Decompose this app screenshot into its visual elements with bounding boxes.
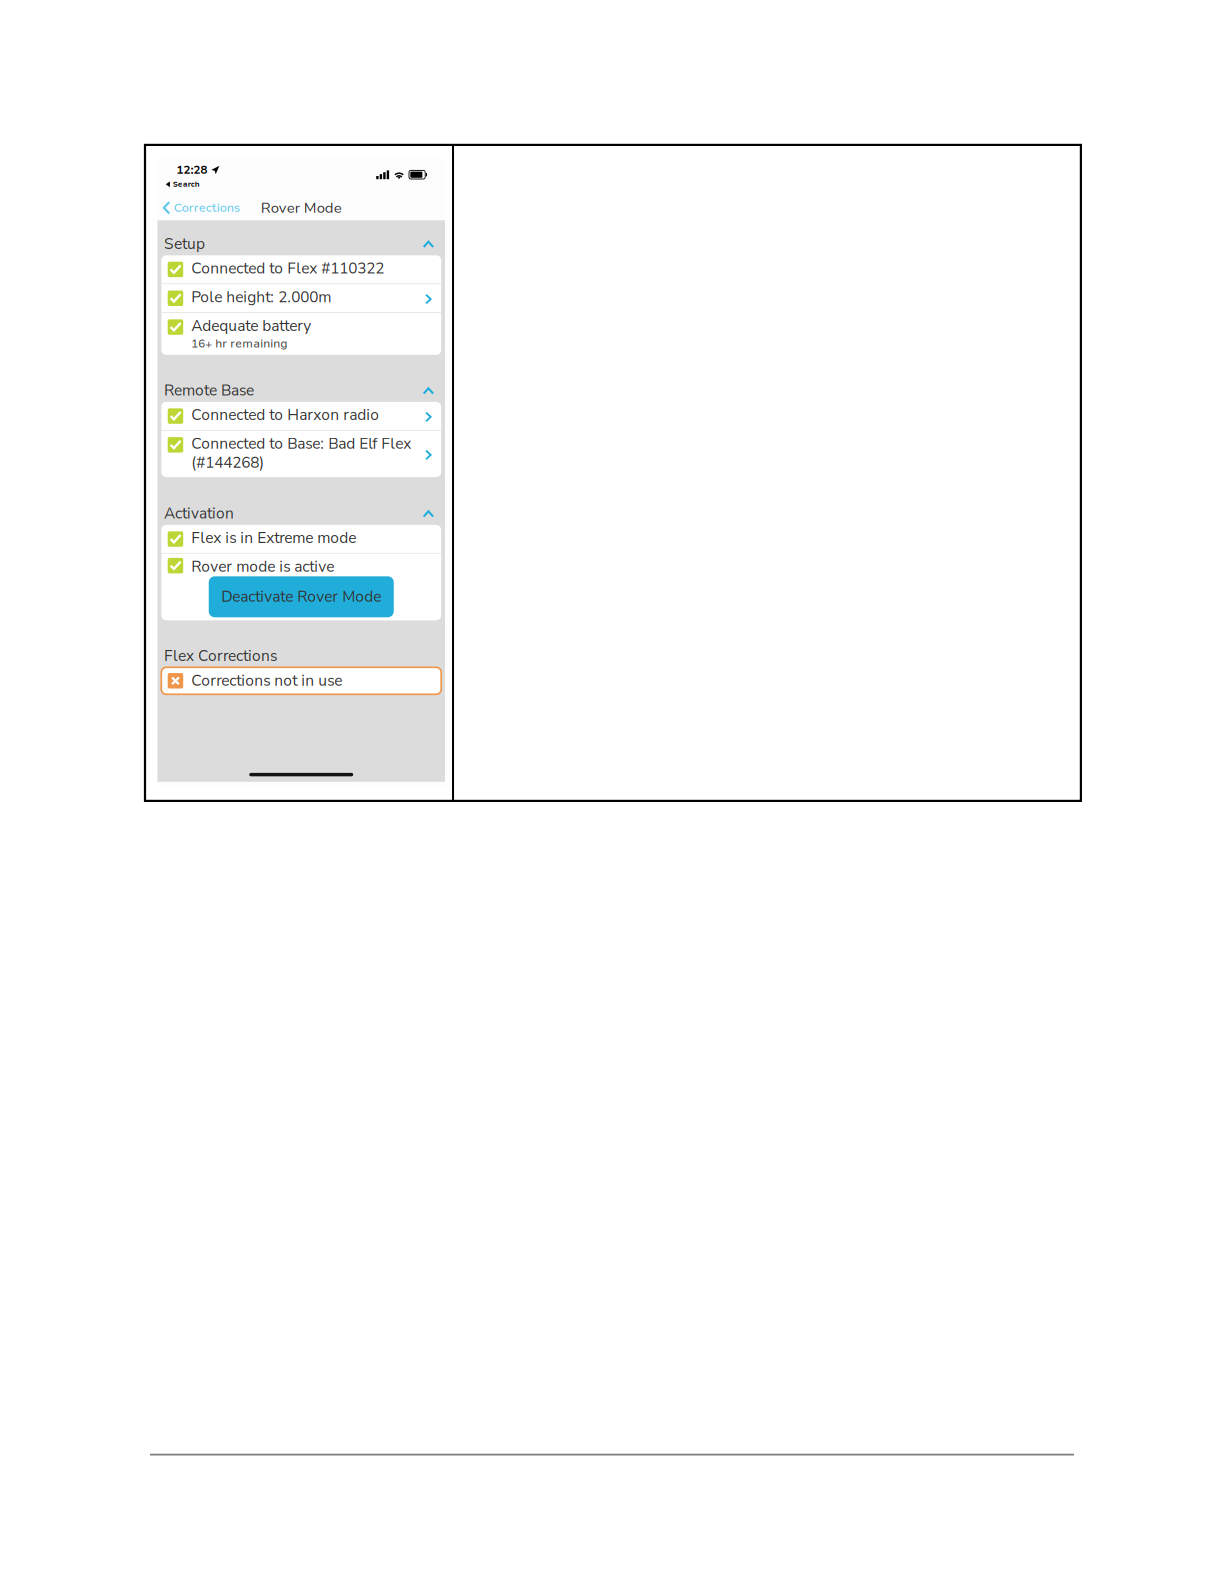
staticText: Corrections <box>174 199 240 216</box>
button[interactable]: Deactivate Rover Mode <box>209 576 394 617</box>
staticText: Adequate battery <box>191 315 311 336</box>
staticText: Rover mode is active <box>191 556 334 577</box>
button[interactable]: Connected to Flex #110322 <box>161 255 441 283</box>
button[interactable]: Corrections <box>157 196 244 219</box>
button[interactable]: Pole height: 2.000m <box>161 284 441 312</box>
staticText: Setup <box>164 233 205 254</box>
staticText: Deactivate Rover Mode <box>221 586 381 607</box>
button[interactable]: Collapse Activation <box>419 505 435 522</box>
button[interactable]: Adequate battery <box>161 313 441 355</box>
button[interactable]: Flex is in Extreme mode <box>161 525 441 553</box>
button[interactable]: Collapse Remote Base <box>419 382 435 399</box>
button[interactable]: Search <box>173 179 200 189</box>
button[interactable]: Connected to Harxon radio <box>161 402 441 430</box>
staticText: Corrections not in use <box>191 670 342 691</box>
staticText: Rover Mode <box>261 198 342 218</box>
staticText: (#144268) <box>191 452 264 473</box>
button[interactable]: Connected to Base: Bad Elf Flex <box>161 431 441 477</box>
staticText: 16+ hr remaining <box>191 336 287 352</box>
staticText: Connected to Harxon radio <box>191 404 379 425</box>
staticText: Flex is in Extreme mode <box>191 527 356 548</box>
button[interactable]: Corrections not in use <box>161 667 441 694</box>
staticText: Activation <box>164 503 234 524</box>
staticText: Search <box>173 179 200 189</box>
staticText: Remote Base <box>164 380 254 401</box>
button[interactable]: Collapse Setup <box>419 236 435 252</box>
staticText: Flex Corrections <box>164 645 277 666</box>
staticText: 12:28 <box>176 162 207 178</box>
staticText: Pole height: 2.000m <box>191 287 331 308</box>
staticText: Connected to Base: Bad Elf Flex <box>191 433 411 454</box>
staticText: Connected to Flex #110322 <box>191 258 384 279</box>
